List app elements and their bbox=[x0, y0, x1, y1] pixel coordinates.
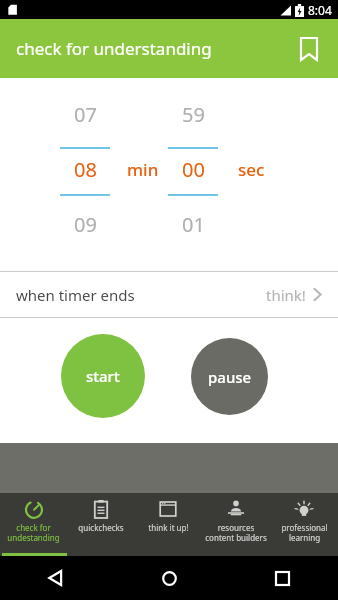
button[interactable]: professional learning bbox=[270, 493, 338, 556]
button[interactable]: Back bbox=[38, 560, 74, 596]
staticText: start bbox=[86, 366, 120, 386]
button[interactable]: check for undestanding bbox=[0, 493, 67, 556]
button[interactable]: 08 bbox=[60, 156, 110, 183]
staticText: think! bbox=[266, 285, 306, 305]
staticText: 59 bbox=[182, 101, 205, 128]
button[interactable]: Home bbox=[151, 560, 187, 596]
staticText: check for understanding bbox=[16, 37, 212, 60]
staticText: 07 bbox=[74, 101, 97, 128]
staticText: quickchecks bbox=[78, 522, 124, 533]
button[interactable]: 00 bbox=[168, 156, 218, 183]
staticText: professional learning bbox=[281, 522, 328, 543]
staticText: check for undestanding bbox=[7, 522, 60, 543]
button[interactable]: Recents bbox=[264, 560, 300, 596]
staticText: 08 bbox=[74, 156, 97, 183]
staticText: resources content builders bbox=[205, 522, 267, 543]
staticText: min bbox=[127, 158, 159, 181]
button[interactable]: think it up! bbox=[134, 493, 202, 556]
staticText: 8:04 bbox=[308, 2, 332, 18]
button[interactable]: resources content builders bbox=[202, 493, 270, 556]
staticText: 09 bbox=[74, 211, 97, 238]
staticText: pause bbox=[208, 367, 252, 387]
staticText: 01 bbox=[182, 211, 205, 238]
button[interactable]: quickchecks bbox=[67, 493, 134, 556]
button[interactable]: Bookmark bbox=[292, 32, 326, 66]
button[interactable]: pause bbox=[191, 338, 268, 415]
staticText: 00 bbox=[182, 156, 205, 183]
button[interactable]: start bbox=[61, 334, 145, 418]
button[interactable]: when timer ends bbox=[0, 272, 338, 317]
staticText: when timer ends bbox=[16, 285, 135, 305]
staticText: sec bbox=[238, 158, 265, 181]
staticText: think it up! bbox=[148, 522, 189, 533]
